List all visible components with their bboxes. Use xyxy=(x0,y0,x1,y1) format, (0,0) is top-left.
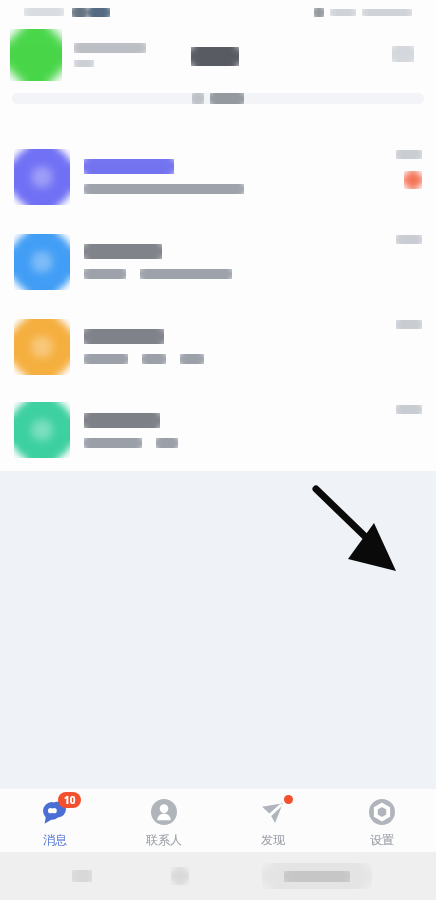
button[interactable]: 设置 xyxy=(327,789,436,852)
button[interactable] xyxy=(0,304,436,389)
button[interactable]: 消息 xyxy=(0,789,109,852)
button[interactable]: 发现 xyxy=(218,789,327,852)
button[interactable] xyxy=(10,26,426,84)
button[interactable]: More xyxy=(388,39,418,69)
staticText: 设置 xyxy=(370,832,394,847)
button[interactable]: Home xyxy=(163,859,197,893)
staticText: 消息 xyxy=(43,832,67,847)
button[interactable] xyxy=(0,134,436,219)
button[interactable] xyxy=(0,389,436,471)
button[interactable]: Recents xyxy=(65,859,99,893)
staticText: 联系人 xyxy=(146,832,182,847)
button[interactable]: Search xyxy=(12,93,424,104)
staticText: 10 xyxy=(64,793,76,807)
button[interactable]: 联系人 xyxy=(109,789,218,852)
staticText: 发现 xyxy=(261,832,285,847)
button[interactable] xyxy=(0,219,436,304)
